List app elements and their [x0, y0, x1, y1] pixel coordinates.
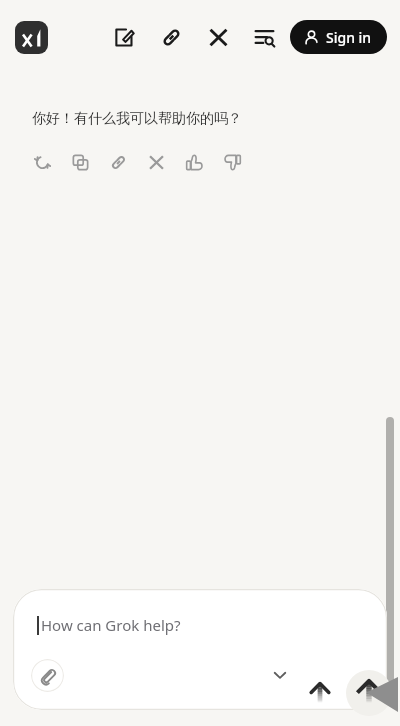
- button[interactable]: Grok home: [15, 21, 48, 54]
- button[interactable]: Open in X: [202, 21, 235, 54]
- button[interactable]: Bad response: [220, 150, 244, 174]
- button[interactable]: Search history: [248, 21, 281, 54]
- button[interactable]: Share on X: [144, 150, 168, 174]
- staticText: 你好！有什么我可以帮助你的吗？: [32, 110, 242, 128]
- staticText: Sign in: [326, 28, 372, 47]
- button[interactable]: Attach file: [31, 659, 64, 692]
- button[interactable]: New chat: [107, 21, 140, 54]
- button[interactable]: Good response: [182, 150, 206, 174]
- button[interactable]: Send: [346, 670, 392, 716]
- staticText: How can Grok help?: [41, 615, 181, 635]
- button[interactable]: Copy: [68, 150, 92, 174]
- button[interactable]: Sign in: [290, 20, 387, 54]
- button[interactable]: Copy link: [155, 21, 188, 54]
- button[interactable]: Voice mode: [300, 674, 340, 714]
- button[interactable]: Share link: [106, 150, 130, 174]
- button[interactable]: Regenerate: [30, 150, 54, 174]
- button[interactable]: More options: [265, 660, 295, 690]
